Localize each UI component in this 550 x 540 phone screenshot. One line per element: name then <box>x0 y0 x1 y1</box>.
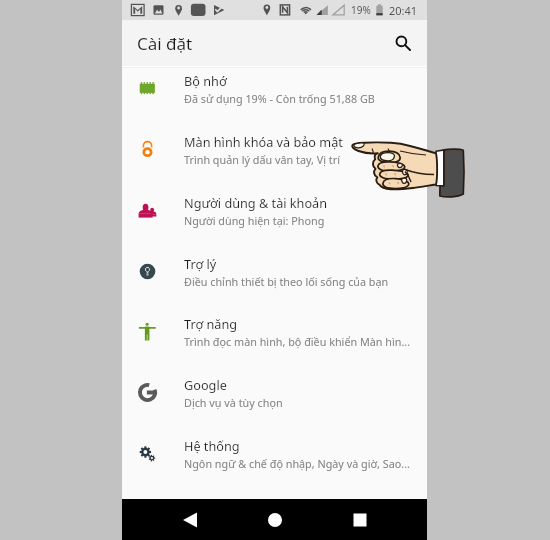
staticText: Màn hình khóa và bảo mật <box>184 133 343 150</box>
staticText: Cài đặt <box>137 32 193 55</box>
button[interactable]: Bộ nhớ <box>122 58 427 119</box>
staticText: Hệ thống <box>184 437 240 454</box>
staticText: Bộ nhớ <box>184 72 227 89</box>
button[interactable]: Trợ lý <box>122 241 427 302</box>
staticText: 20:41 <box>389 3 418 18</box>
button[interactable]: Google <box>122 362 427 423</box>
button[interactable]: Hệ thống <box>122 423 427 484</box>
button[interactable]: Recent apps <box>345 505 375 535</box>
staticText: Điều chỉnh thiết bị theo lối sống của bạ… <box>184 274 389 289</box>
staticText: Trợ năng <box>184 315 238 332</box>
staticText: Trình đọc màn hình, bộ điều khiển Màn hì… <box>184 334 411 349</box>
staticText: Google <box>184 376 227 393</box>
button[interactable]: Người dùng & tài khoản <box>122 180 427 241</box>
staticText: Ngôn ngữ & chế độ nhập, Ngày và giờ, Sao… <box>184 456 410 471</box>
staticText: Dịch vụ và tùy chọn <box>184 395 283 410</box>
button[interactable]: Back <box>175 505 205 535</box>
button[interactable]: Trợ năng <box>122 301 427 362</box>
staticText: Người dùng hiện tại: Phong <box>184 213 325 228</box>
button[interactable]: Home <box>260 505 290 535</box>
staticText: Đã sử dụng 19% - Còn trống 51,88 GB <box>184 91 375 106</box>
button[interactable]: Màn hình khóa và bảo mật <box>122 119 427 180</box>
staticText: Người dùng & tài khoản <box>184 194 328 211</box>
staticText: 19% <box>351 3 371 17</box>
button[interactable]: Search <box>389 29 417 57</box>
staticText: Trợ lý <box>184 255 217 272</box>
staticText: Trình quản lý dấu vân tay, Vị trí <box>184 152 340 167</box>
